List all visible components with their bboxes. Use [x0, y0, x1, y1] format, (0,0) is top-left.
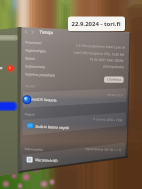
button[interactable] [0, 0, 142, 189]
